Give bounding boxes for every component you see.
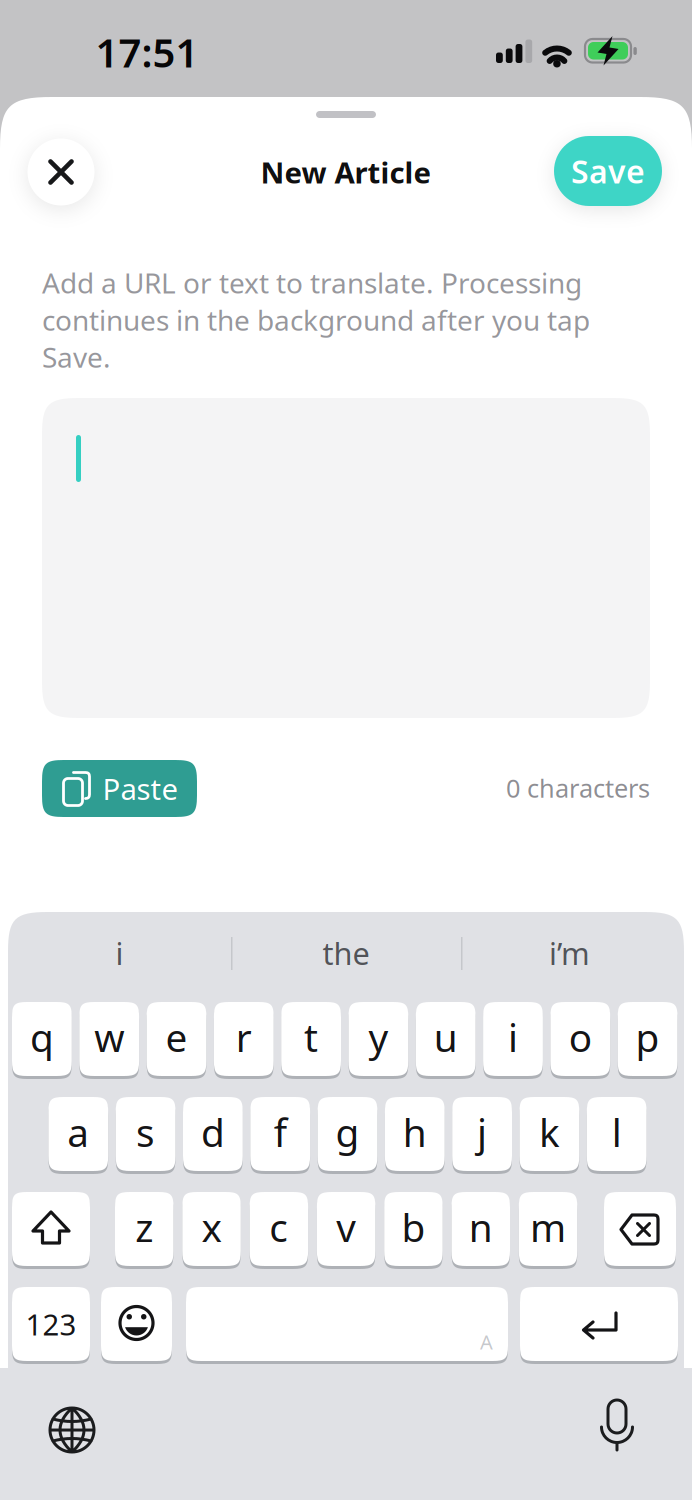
button[interactable]: i xyxy=(483,1002,543,1076)
button[interactable]: Space xyxy=(186,1287,508,1361)
button[interactable]: v xyxy=(317,1192,375,1266)
button[interactable]: i’m xyxy=(462,925,677,981)
button[interactable]: Article text xyxy=(42,398,650,718)
staticText: s xyxy=(136,1106,155,1158)
button[interactable]: s xyxy=(116,1097,175,1171)
staticText: continues in the background after you ta… xyxy=(42,301,590,338)
button[interactable]: p xyxy=(618,1002,677,1076)
button[interactable]: Paste xyxy=(42,760,197,817)
button[interactable]: z xyxy=(115,1192,173,1266)
button[interactable]: i xyxy=(12,925,227,981)
staticText: t xyxy=(304,1011,318,1063)
staticText: Add a URL or text to translate. Processi… xyxy=(42,264,582,301)
staticText: c xyxy=(269,1201,288,1253)
staticText: l xyxy=(612,1106,622,1158)
staticText: k xyxy=(539,1106,560,1158)
staticText: h xyxy=(403,1106,427,1158)
staticText: p xyxy=(636,1011,660,1063)
button[interactable]: the xyxy=(238,925,453,981)
button[interactable]: m xyxy=(519,1192,577,1266)
button[interactable]: r xyxy=(214,1002,274,1076)
staticText: A xyxy=(480,1328,493,1355)
staticText: i’m xyxy=(549,933,590,973)
button[interactable]: b xyxy=(384,1192,443,1266)
staticText: r xyxy=(236,1011,252,1063)
staticText: d xyxy=(201,1106,225,1158)
button[interactable]: Next keyboard xyxy=(47,1405,97,1455)
staticText: a xyxy=(67,1106,89,1158)
staticText: x xyxy=(202,1201,222,1253)
button[interactable]: Delete xyxy=(604,1192,676,1266)
staticText: w xyxy=(94,1011,124,1063)
staticText: Save. xyxy=(42,338,111,376)
staticText: u xyxy=(434,1011,458,1063)
staticText: m xyxy=(530,1201,566,1253)
staticText: f xyxy=(274,1106,287,1158)
button[interactable]: x xyxy=(182,1192,241,1266)
button[interactable]: a xyxy=(48,1097,108,1171)
staticText: z xyxy=(135,1201,153,1253)
button[interactable]: e xyxy=(147,1002,206,1076)
button[interactable]: f xyxy=(250,1097,310,1171)
staticText: e xyxy=(165,1011,187,1063)
staticText: j xyxy=(477,1106,487,1158)
staticText: Paste xyxy=(102,769,178,808)
staticText: 17:51 xyxy=(95,25,198,78)
button[interactable]: q xyxy=(12,1002,72,1076)
button[interactable]: w xyxy=(79,1002,139,1076)
staticText: New Article xyxy=(260,152,431,191)
button[interactable]: o xyxy=(550,1002,610,1076)
button[interactable]: j xyxy=(452,1097,512,1171)
staticText: 123 xyxy=(25,1304,76,1343)
button[interactable]: u xyxy=(416,1002,476,1076)
button[interactable]: g xyxy=(318,1097,377,1171)
button[interactable]: t xyxy=(281,1002,341,1076)
staticText: q xyxy=(30,1011,54,1063)
button[interactable]: Save xyxy=(554,136,662,206)
staticText: g xyxy=(335,1106,359,1158)
button[interactable]: Shift xyxy=(12,1192,90,1266)
button[interactable]: Emoji xyxy=(101,1287,172,1361)
staticText: n xyxy=(469,1201,493,1253)
button[interactable]: 123 xyxy=(12,1287,90,1361)
button[interactable]: c xyxy=(250,1192,308,1266)
button[interactable]: n xyxy=(451,1192,510,1266)
button[interactable]: Return xyxy=(520,1287,678,1361)
staticText: i xyxy=(508,1011,518,1063)
staticText: b xyxy=(401,1201,425,1253)
button[interactable]: Dictation xyxy=(591,1396,643,1460)
staticText: 0 characters xyxy=(506,771,650,805)
button[interactable]: k xyxy=(519,1097,579,1171)
staticText: i xyxy=(115,933,123,973)
button[interactable]: y xyxy=(348,1002,408,1076)
button[interactable]: d xyxy=(183,1097,243,1171)
staticText: Save xyxy=(571,150,645,192)
staticText: y xyxy=(368,1011,388,1063)
staticText: the xyxy=(322,933,369,973)
button[interactable]: h xyxy=(385,1097,445,1171)
button[interactable]: l xyxy=(587,1097,647,1171)
staticText: o xyxy=(569,1011,592,1063)
staticText: v xyxy=(336,1201,356,1253)
button[interactable]: Close xyxy=(27,138,94,205)
